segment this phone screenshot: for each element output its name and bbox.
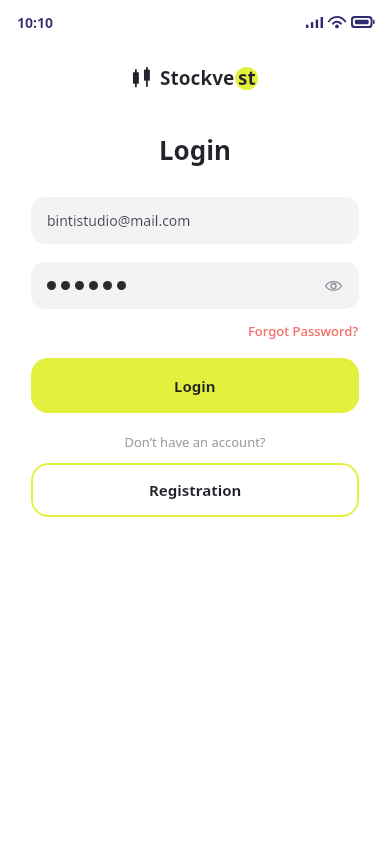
staticText: 10:10 — [17, 13, 53, 32]
staticText: Don’t have an account? — [0, 433, 390, 451]
staticText: Registration — [149, 480, 242, 500]
button[interactable]: Login — [31, 358, 359, 413]
staticText: Forgot Password? — [248, 322, 359, 340]
button[interactable]: bintistudio@mail.com — [31, 197, 359, 244]
staticText: bintistudio@mail.com — [47, 211, 191, 230]
staticText: st — [238, 65, 256, 91]
staticText: Stockve — [160, 65, 235, 91]
button[interactable]: Registration — [31, 463, 359, 517]
staticText: Login — [0, 132, 390, 167]
button[interactable]: Forgot Password? — [248, 322, 359, 340]
button[interactable]: Show password — [317, 270, 349, 302]
staticText: Login — [174, 376, 216, 396]
button[interactable]: Show password — [31, 262, 359, 309]
